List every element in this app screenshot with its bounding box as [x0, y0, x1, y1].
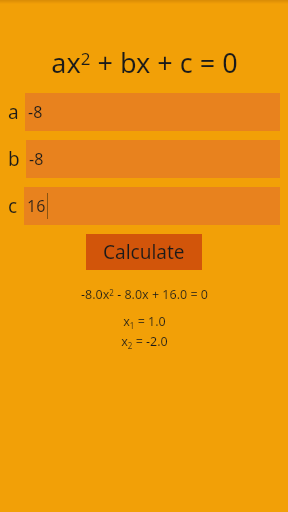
button[interactable]: 16 — [24, 187, 280, 225]
staticText: b — [8, 146, 20, 172]
staticText: c — [8, 193, 18, 219]
staticText: x2 = -2.0 — [121, 333, 168, 351]
staticText: Calculate — [103, 239, 185, 265]
staticText: -8 — [28, 101, 43, 123]
staticText: a — [8, 99, 19, 125]
button[interactable]: -8 — [25, 93, 280, 131]
staticText: -8.0x2 - 8.0x + 16.0 = 0 — [81, 286, 208, 303]
staticText: x1 = 1.0 — [123, 313, 166, 331]
button[interactable]: -8 — [26, 140, 280, 178]
staticText: 16 — [27, 195, 46, 217]
staticText: -8 — [29, 148, 44, 170]
staticText: ax2 + bx + c = 0 — [51, 44, 238, 81]
button[interactable]: Calculate — [86, 234, 202, 270]
